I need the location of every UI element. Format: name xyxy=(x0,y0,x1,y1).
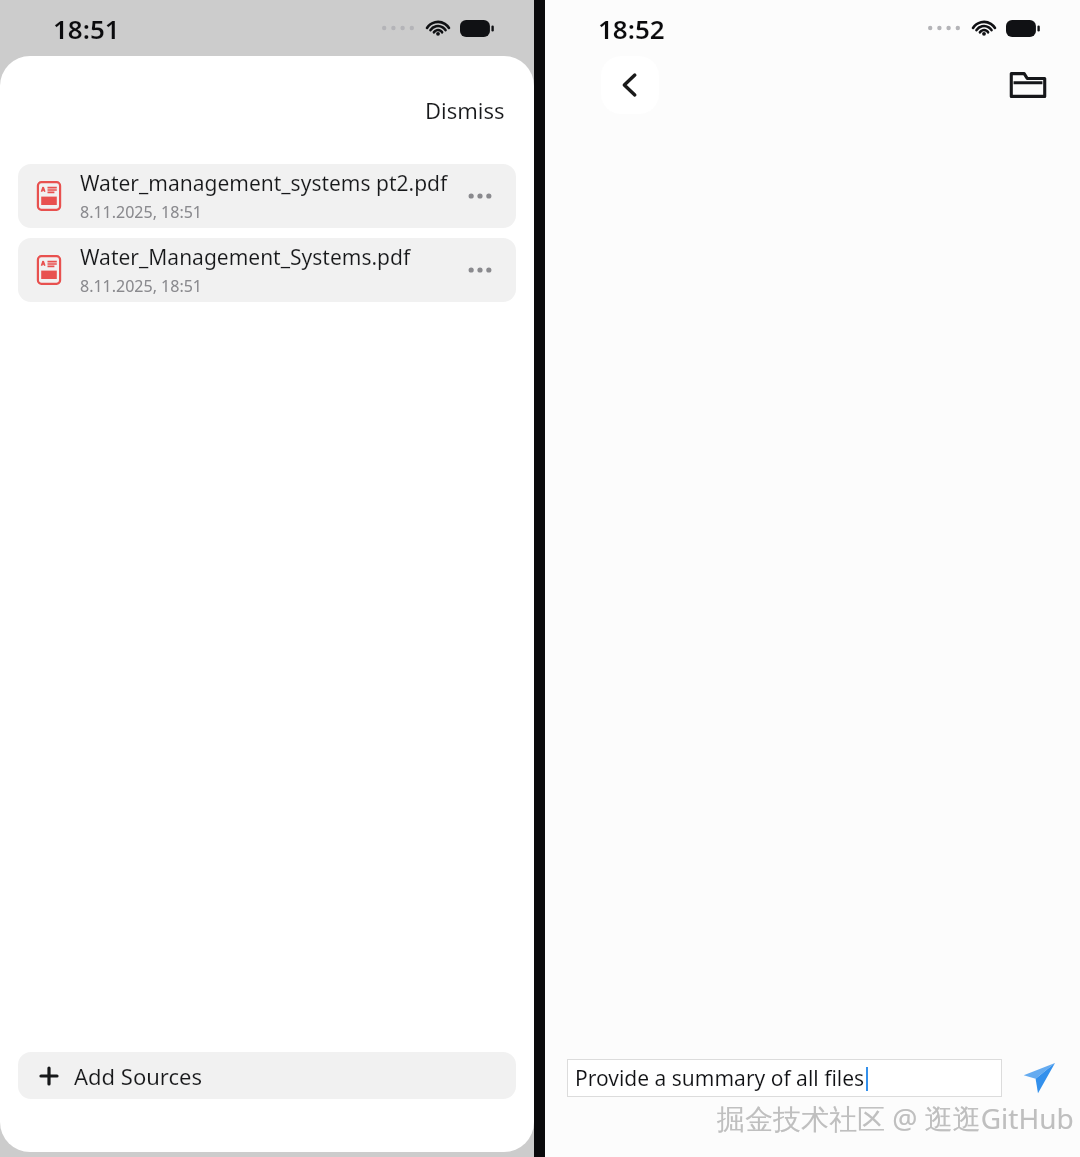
button[interactable]: Water_Management_Systems.pdf xyxy=(18,238,516,302)
button[interactable]: Provide a summary of all files xyxy=(567,1059,1002,1097)
staticText: Add Sources xyxy=(74,1061,202,1091)
staticText: Provide a summary of all files xyxy=(575,1064,865,1093)
button[interactable]: Back xyxy=(601,56,659,114)
staticText: Water_Management_Systems.pdf xyxy=(80,243,411,272)
staticText: 8.11.2025, 18:51 xyxy=(80,275,202,297)
button[interactable]: Add Sources xyxy=(18,1052,516,1099)
button[interactable]: Dismiss xyxy=(407,86,523,134)
staticText: Dismiss xyxy=(425,95,505,125)
staticText: 掘金技术社区 @ 逛逛GitHub xyxy=(717,1099,1074,1137)
button[interactable]: More options xyxy=(460,250,500,290)
button[interactable]: Files xyxy=(998,55,1058,115)
button[interactable]: More options xyxy=(460,176,500,216)
button[interactable]: Water_management_systems pt2.pdf xyxy=(18,164,516,228)
staticText: 8.11.2025, 18:51 xyxy=(80,201,202,223)
staticText: 18:52 xyxy=(598,11,665,46)
button[interactable]: Send xyxy=(1016,1055,1062,1101)
staticText: 18:51 xyxy=(53,11,120,46)
staticText: Water_management_systems pt2.pdf xyxy=(80,169,448,198)
